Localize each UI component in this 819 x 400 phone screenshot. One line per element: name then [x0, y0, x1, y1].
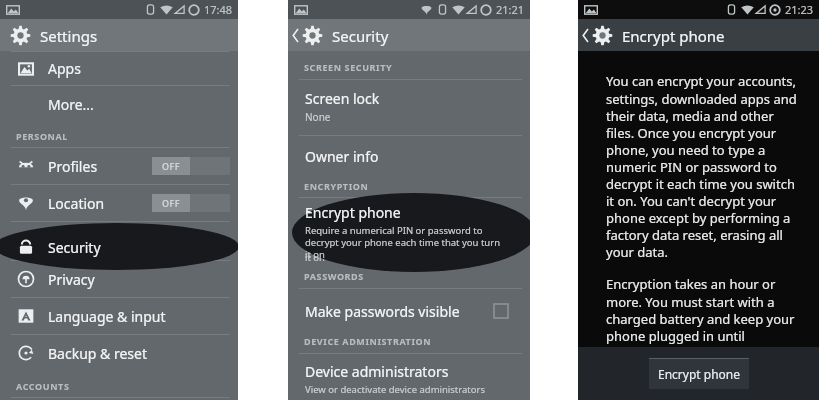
- button[interactable]: Backup & reset: [0, 335, 238, 371]
- staticText: Privacy: [48, 270, 95, 289]
- other: Back: [292, 29, 300, 42]
- staticText: PASSWORDS: [304, 270, 364, 282]
- staticText: OFF: [162, 197, 181, 209]
- staticText: Profiles: [48, 157, 98, 176]
- staticText: 21:23: [785, 2, 814, 17]
- button[interactable]: Security: [0, 222, 238, 260]
- staticText: ENCRYPTION: [304, 180, 369, 192]
- button[interactable]: Device administrators: [288, 354, 530, 396]
- staticText: Backup & reset: [48, 344, 147, 363]
- staticText: Screen lock: [305, 89, 380, 108]
- button[interactable]: Language & input: [0, 298, 238, 334]
- staticText: Encrypt phone: [658, 366, 740, 382]
- button[interactable]: Location: [0, 185, 238, 221]
- staticText: OFF: [162, 160, 181, 172]
- staticText: Encryption takes an hour or more. You mu…: [606, 275, 805, 347]
- button[interactable]: Encrypt phone: [288, 198, 530, 270]
- button[interactable]: Screen lock: [288, 80, 530, 135]
- staticText: Settings: [40, 26, 98, 46]
- staticText: Encrypt phone: [305, 203, 401, 222]
- staticText: Encrypt phone: [305, 206, 401, 225]
- staticText: More...: [48, 95, 94, 114]
- button[interactable]: Apps: [0, 52, 238, 85]
- button[interactable]: Back: [578, 19, 819, 51]
- staticText: Apps: [48, 59, 81, 78]
- staticText: Security: [332, 26, 389, 46]
- staticText: View or deactivate device administrators: [305, 383, 485, 396]
- staticText: Device administrators: [305, 362, 449, 381]
- staticText: Require a numerical PIN or password to d…: [305, 224, 508, 261]
- staticText: Owner info: [305, 147, 379, 166]
- button[interactable]: OFF: [152, 157, 230, 175]
- staticText: Encrypt phone: [622, 26, 725, 46]
- button[interactable]: Back: [288, 19, 530, 51]
- staticText: Security: [48, 238, 101, 257]
- button[interactable]: Privacy: [0, 261, 238, 297]
- staticText: 17:48: [204, 2, 233, 17]
- staticText: Require a numerical PIN or password to d…: [305, 227, 508, 264]
- button[interactable]: OFF: [152, 194, 230, 212]
- button[interactable]: Security: [0, 233, 238, 261]
- button[interactable]: Owner info: [288, 136, 530, 177]
- staticText: Language & input: [48, 307, 166, 326]
- staticText: None: [305, 110, 331, 124]
- button[interactable]: Profiles: [0, 148, 238, 184]
- staticText: Make passwords visible: [305, 302, 460, 321]
- staticText: You can encrypt your accounts, settings,…: [606, 72, 805, 261]
- button[interactable]: More...: [0, 86, 238, 122]
- button[interactable]: Encrypt phone: [649, 358, 749, 389]
- button[interactable]: Encrypt phone: [288, 203, 530, 261]
- staticText: Security: [48, 232, 101, 251]
- button[interactable]: Make passwords visible: [288, 289, 530, 333]
- other: Back: [582, 29, 590, 42]
- staticText: Location: [48, 194, 105, 213]
- staticText: ACCOUNTS: [16, 380, 70, 392]
- button[interactable]: Settings: [0, 19, 238, 51]
- staticText: PERSONAL: [16, 130, 68, 142]
- staticText: SCREEN SECURITY: [304, 61, 393, 73]
- staticText: 21:21: [496, 2, 525, 17]
- staticText: DEVICE ADMINISTRATION: [304, 335, 432, 347]
